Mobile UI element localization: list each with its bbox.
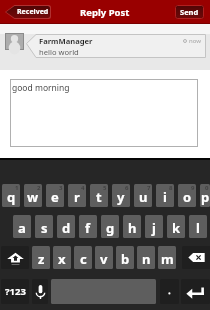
staticText: FarmManager <box>39 36 93 46</box>
staticText: 4 <box>81 184 85 192</box>
staticText: d <box>62 219 71 237</box>
staticText: a <box>18 219 26 237</box>
button[interactable]: FarmManager <box>26 34 206 58</box>
button[interactable]: f <box>79 215 97 238</box>
staticText: Received <box>17 7 49 17</box>
staticText: u <box>139 188 148 206</box>
button[interactable]: Avatar <box>5 33 24 50</box>
staticText: Send <box>180 7 199 17</box>
button[interactable]: n <box>137 246 155 269</box>
staticText: now <box>189 37 201 45</box>
button[interactable]: h <box>123 215 141 238</box>
staticText: good morning <box>12 82 70 94</box>
button[interactable]: t <box>90 184 108 207</box>
staticText: j <box>152 219 156 237</box>
staticText: 9 <box>191 184 195 192</box>
staticText: g <box>106 219 115 237</box>
staticText: s <box>41 219 48 237</box>
button[interactable]: y <box>112 184 130 207</box>
button[interactable]: l <box>189 215 207 238</box>
staticText: n <box>142 250 151 268</box>
staticText: ?123 <box>5 285 26 298</box>
button[interactable]: Received <box>5 5 51 19</box>
button[interactable]: good morning <box>10 79 198 147</box>
staticText: m <box>161 250 174 268</box>
staticText: v <box>100 250 108 268</box>
staticText: t <box>96 188 102 206</box>
staticText: hello world <box>39 47 79 57</box>
staticText: 2 <box>37 184 41 192</box>
staticText: 6 <box>125 184 129 192</box>
staticText: h <box>128 219 137 237</box>
staticText: y <box>117 188 125 206</box>
staticText: 3 <box>59 184 63 192</box>
staticText: 1 <box>15 184 19 192</box>
button[interactable]: i <box>156 184 174 207</box>
button[interactable]: Send <box>175 5 204 19</box>
staticText: Reply Post <box>80 6 130 19</box>
button[interactable]: x <box>53 246 71 269</box>
staticText: 7 <box>147 184 151 192</box>
button[interactable]: z <box>32 246 50 269</box>
button[interactable]: ?123 <box>1 279 29 304</box>
button[interactable]: c <box>74 246 92 269</box>
staticText: x <box>58 250 66 268</box>
button[interactable]: o <box>178 184 196 207</box>
button[interactable]: m <box>158 246 176 269</box>
staticText: c <box>80 250 87 268</box>
staticText: w <box>27 188 39 206</box>
button[interactable]: b <box>116 246 134 269</box>
button[interactable]: e <box>46 184 64 207</box>
staticText: r <box>74 188 80 206</box>
button[interactable]: g <box>101 215 119 238</box>
button[interactable]: q <box>2 184 20 207</box>
button[interactable]: Voice input <box>32 279 48 304</box>
button[interactable]: Period <box>160 279 179 304</box>
button[interactable]: j <box>145 215 163 238</box>
button[interactable]: r <box>68 184 86 207</box>
button[interactable]: s <box>35 215 53 238</box>
staticText: z <box>38 250 45 268</box>
staticText: o <box>183 188 192 206</box>
button[interactable]: v <box>95 246 113 269</box>
button[interactable]: Shift <box>1 246 29 269</box>
staticText: 5 <box>103 184 107 192</box>
staticText: p <box>201 188 210 206</box>
staticText: q <box>7 188 16 206</box>
staticText: b <box>121 250 130 268</box>
staticText: k <box>172 219 181 237</box>
staticText: l <box>196 219 200 237</box>
button[interactable]: d <box>57 215 75 238</box>
button[interactable]: u <box>134 184 152 207</box>
button[interactable]: k <box>167 215 185 238</box>
button[interactable]: Backspace <box>182 246 210 269</box>
button[interactable]: Enter <box>181 279 210 304</box>
staticText: 8 <box>169 184 173 192</box>
staticText: f <box>85 219 91 237</box>
button[interactable]: a <box>13 215 31 238</box>
staticText: 0 <box>205 184 209 192</box>
staticText: i <box>163 188 167 206</box>
staticText: e <box>51 188 59 206</box>
button[interactable]: p <box>200 184 210 207</box>
button[interactable]: w <box>24 184 42 207</box>
